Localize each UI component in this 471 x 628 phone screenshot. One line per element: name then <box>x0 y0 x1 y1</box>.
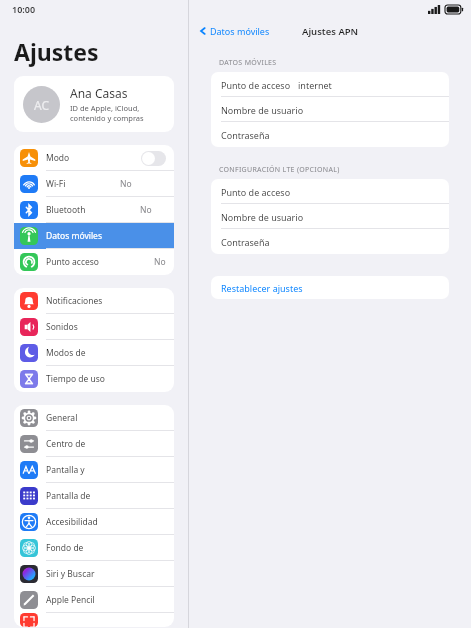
button[interactable]: Notificaciones <box>14 288 174 314</box>
button[interactable]: Modo Avión <box>14 145 174 171</box>
button[interactable]: Tiempo de uso <box>14 366 174 392</box>
staticText: Punto acceso personal <box>46 256 100 268</box>
button[interactable]: Contraseña <box>211 229 449 254</box>
button[interactable]: Nombre de usuario <box>211 97 449 122</box>
staticText: 10:00 <box>12 3 36 15</box>
staticText: General <box>46 412 78 424</box>
button[interactable]: Contraseña <box>211 122 449 147</box>
staticText: No <box>140 204 152 216</box>
staticText: Pantalla y brillo <box>46 464 106 476</box>
button[interactable]: Datos móviles <box>14 223 174 249</box>
staticText: No <box>120 178 132 190</box>
staticText: DATOS MÓVILES <box>219 58 277 68</box>
staticText: Ana Casas <box>70 85 128 101</box>
button[interactable]: AC <box>14 76 174 132</box>
staticText: Nombre de usuario <box>221 104 304 116</box>
button[interactable]: Nombre de usuario <box>211 204 449 229</box>
button[interactable] <box>14 613 174 627</box>
button[interactable]: Fondo de pantalla <box>14 535 174 561</box>
button[interactable]: Wi-Fi <box>14 171 174 197</box>
staticText: Contraseña <box>221 236 270 248</box>
staticText: No <box>154 256 166 268</box>
button[interactable]: Bluetooth <box>14 197 174 223</box>
staticText: Datos móviles <box>210 25 270 37</box>
staticText: Ajustes <box>14 36 99 67</box>
button[interactable]: Datos móviles <box>197 22 272 40</box>
button[interactable]: Siri y Buscar <box>14 561 174 587</box>
button[interactable]: Sonidos <box>14 314 174 340</box>
button[interactable]: Punto de acceso <box>211 179 449 204</box>
button[interactable]: Centro de control <box>14 431 174 457</box>
staticText: Sonidos <box>46 321 78 333</box>
staticText: Punto de acceso <box>221 79 291 91</box>
staticText: Bluetooth <box>46 204 86 216</box>
staticText: ID de Apple, iCloud, <box>70 103 140 113</box>
staticText: Modos de concentración <box>46 347 106 359</box>
staticText: Datos móviles <box>46 230 102 242</box>
button[interactable]: Restablecer ajustes <box>211 276 449 299</box>
staticText: Accesibilidad <box>46 516 98 528</box>
staticText: Nombre de usuario <box>221 211 304 223</box>
button[interactable]: Pantalla y brillo <box>14 457 174 483</box>
button[interactable]: Pantalla de inicio y el Dock <box>14 483 174 509</box>
staticText: Restablecer ajustes <box>221 282 303 294</box>
staticText: Punto de acceso <box>221 186 291 198</box>
staticText: CONFIGURACIÓN LTE (OPCIONAL) <box>219 165 340 175</box>
staticText: Tiempo de uso <box>46 373 105 385</box>
button[interactable]: Apple Pencil <box>14 587 174 613</box>
staticText: contenido y compras <box>70 113 144 123</box>
staticText: Modo Avión <box>46 152 93 164</box>
button[interactable]: Punto acceso personal <box>14 249 174 275</box>
staticText: Apple Pencil <box>46 594 95 606</box>
button[interactable]: Accesibilidad <box>14 509 174 535</box>
staticText: Siri y Buscar <box>46 568 95 580</box>
staticText: Wi-Fi <box>46 178 66 190</box>
button[interactable]: Punto de acceso <box>211 72 449 97</box>
staticText: Ajustes APN <box>302 25 359 38</box>
staticText: Fondo de pantalla <box>46 542 106 554</box>
staticText: Centro de control <box>46 438 106 450</box>
staticText: AC <box>34 97 50 113</box>
staticText: Notificaciones <box>46 295 103 307</box>
staticText: Pantalla de inicio y el Dock <box>46 490 106 502</box>
button[interactable]: Modos de concentración <box>14 340 174 366</box>
button[interactable]: General <box>14 405 174 431</box>
staticText: internet <box>298 79 332 91</box>
staticText: Contraseña <box>221 129 270 141</box>
